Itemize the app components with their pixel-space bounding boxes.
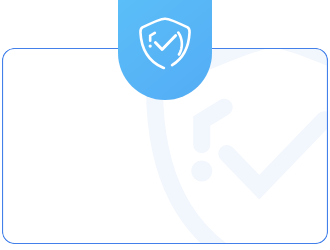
button[interactable]: Security verified	[118, 0, 212, 100]
button[interactable]	[2, 48, 328, 244]
